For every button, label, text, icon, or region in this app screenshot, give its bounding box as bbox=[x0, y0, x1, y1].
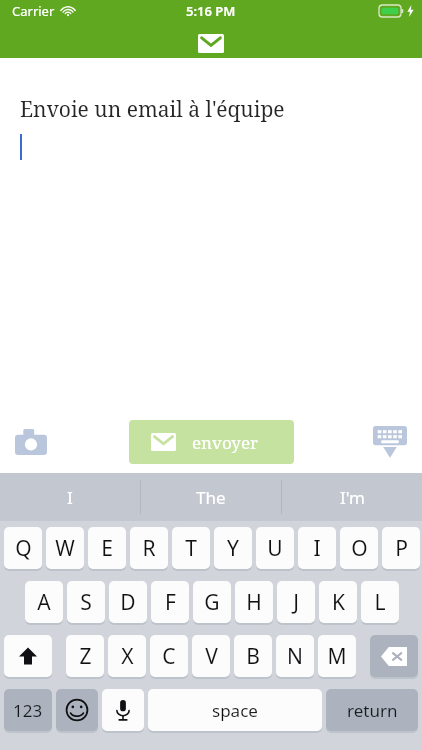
button[interactable]: Camera bbox=[14, 425, 48, 459]
staticText: C bbox=[162, 642, 176, 671]
staticText: Y bbox=[227, 534, 239, 563]
button[interactable]: Z bbox=[66, 635, 104, 677]
button[interactable]: return bbox=[326, 689, 418, 731]
staticText: Q bbox=[15, 534, 32, 563]
staticText: W bbox=[55, 534, 75, 563]
staticText: G bbox=[204, 588, 220, 617]
button[interactable]: K bbox=[319, 581, 357, 623]
button[interactable]: V bbox=[192, 635, 230, 677]
button[interactable]: Y bbox=[214, 527, 252, 569]
button[interactable]: 123 bbox=[4, 689, 52, 731]
button[interactable]: Backspace bbox=[370, 635, 418, 677]
button[interactable]: T bbox=[172, 527, 210, 569]
staticText: I bbox=[67, 486, 73, 509]
button[interactable]: Q bbox=[4, 527, 42, 569]
staticText: R bbox=[142, 534, 156, 563]
staticText: return bbox=[347, 699, 398, 722]
staticText: U bbox=[267, 534, 283, 563]
staticText: V bbox=[205, 642, 218, 671]
staticText: T bbox=[185, 534, 197, 563]
button[interactable]: J bbox=[277, 581, 315, 623]
staticText: S bbox=[80, 588, 92, 617]
staticText: A bbox=[37, 588, 51, 617]
button[interactable]: P bbox=[382, 527, 420, 569]
staticText: D bbox=[120, 588, 136, 617]
button[interactable]: L bbox=[361, 581, 399, 623]
staticText: P bbox=[395, 534, 408, 563]
staticText: The bbox=[196, 486, 226, 509]
button[interactable]: envoyer bbox=[129, 420, 294, 464]
staticText: O bbox=[351, 534, 368, 563]
staticText: H bbox=[246, 588, 262, 617]
button[interactable]: Shift bbox=[4, 635, 52, 677]
button[interactable]: S bbox=[67, 581, 105, 623]
button[interactable]: W bbox=[46, 527, 84, 569]
button[interactable]: U bbox=[256, 527, 294, 569]
button[interactable]: C bbox=[150, 635, 188, 677]
staticText: L bbox=[374, 588, 386, 617]
button[interactable]: F bbox=[151, 581, 189, 623]
button[interactable]: N bbox=[276, 635, 314, 677]
button[interactable]: The bbox=[141, 473, 281, 521]
staticText: X bbox=[121, 642, 134, 671]
button[interactable]: space bbox=[148, 689, 322, 731]
button[interactable]: M bbox=[318, 635, 356, 677]
staticText: Envoie un email à l'équipe bbox=[20, 95, 285, 124]
button[interactable]: I bbox=[298, 527, 336, 569]
button[interactable]: X bbox=[108, 635, 146, 677]
staticText: B bbox=[246, 642, 260, 671]
button[interactable]: Emoji bbox=[56, 689, 98, 731]
staticText: J bbox=[293, 588, 299, 617]
button[interactable]: Email bbox=[198, 34, 224, 53]
button[interactable]: G bbox=[193, 581, 231, 623]
staticText: N bbox=[287, 642, 303, 671]
staticText: envoyer bbox=[192, 431, 259, 454]
staticText: M bbox=[327, 642, 347, 671]
button[interactable]: E bbox=[88, 527, 126, 569]
staticText: 123 bbox=[13, 699, 43, 722]
staticText: space bbox=[212, 699, 258, 722]
button[interactable]: D bbox=[109, 581, 147, 623]
staticText: E bbox=[101, 534, 113, 563]
staticText: Carrier bbox=[12, 2, 55, 20]
button[interactable]: R bbox=[130, 527, 168, 569]
button[interactable]: I bbox=[0, 473, 140, 521]
button[interactable]: Hide keyboard bbox=[372, 424, 408, 460]
staticText: 5:16 PM bbox=[186, 2, 236, 20]
staticText: F bbox=[165, 588, 176, 617]
button[interactable]: B bbox=[234, 635, 272, 677]
button[interactable]: O bbox=[340, 527, 378, 569]
button[interactable]: A bbox=[25, 581, 63, 623]
staticText: I bbox=[313, 534, 321, 563]
staticText: I'm bbox=[340, 486, 365, 509]
button[interactable]: Dictation bbox=[102, 689, 144, 731]
button[interactable]: I'm bbox=[282, 473, 422, 521]
button[interactable]: H bbox=[235, 581, 273, 623]
staticText: K bbox=[332, 588, 345, 617]
staticText: Z bbox=[79, 642, 92, 671]
